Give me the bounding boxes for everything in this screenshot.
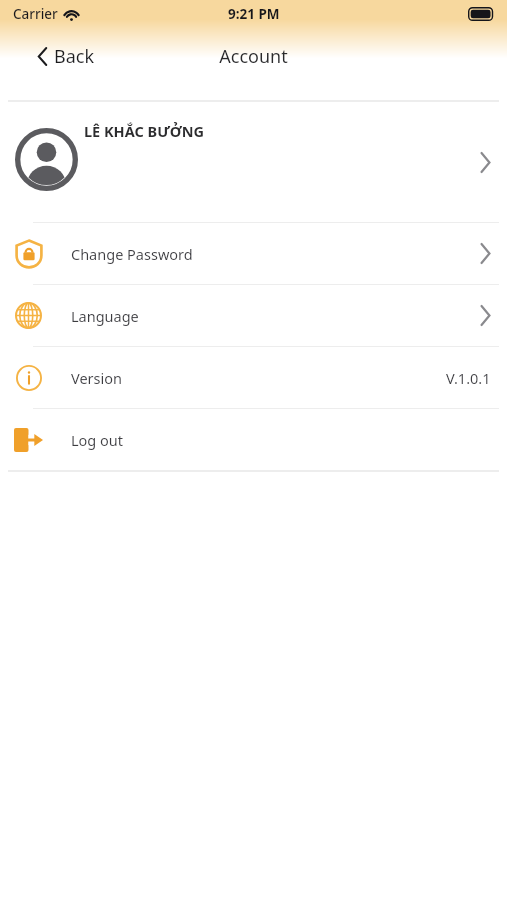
other: Open [480, 244, 491, 263]
staticText: LÊ KHẮC BƯỞNG [84, 121, 205, 141]
other: Open [480, 306, 491, 325]
staticText: Back [54, 44, 95, 69]
staticText: V.1.0.1 [446, 368, 491, 388]
button[interactable]: Back [0, 36, 109, 77]
staticText: Change Password [71, 244, 480, 264]
button[interactable]: LÊ KHẮC BƯỞNG [0, 102, 507, 222]
button[interactable]: Change Password [0, 223, 507, 284]
button[interactable]: Version [0, 347, 507, 408]
other: Open [480, 153, 491, 172]
staticText: Log out [71, 430, 491, 450]
staticText: Account [219, 44, 288, 69]
staticText: Version [71, 368, 446, 388]
other: Log out [14, 427, 43, 453]
staticText: Language [71, 306, 480, 326]
button[interactable]: Language [0, 285, 507, 346]
staticText: Carrier [13, 5, 58, 23]
button[interactable]: Log out [0, 409, 507, 470]
staticText: 9:21 PM [228, 5, 280, 23]
